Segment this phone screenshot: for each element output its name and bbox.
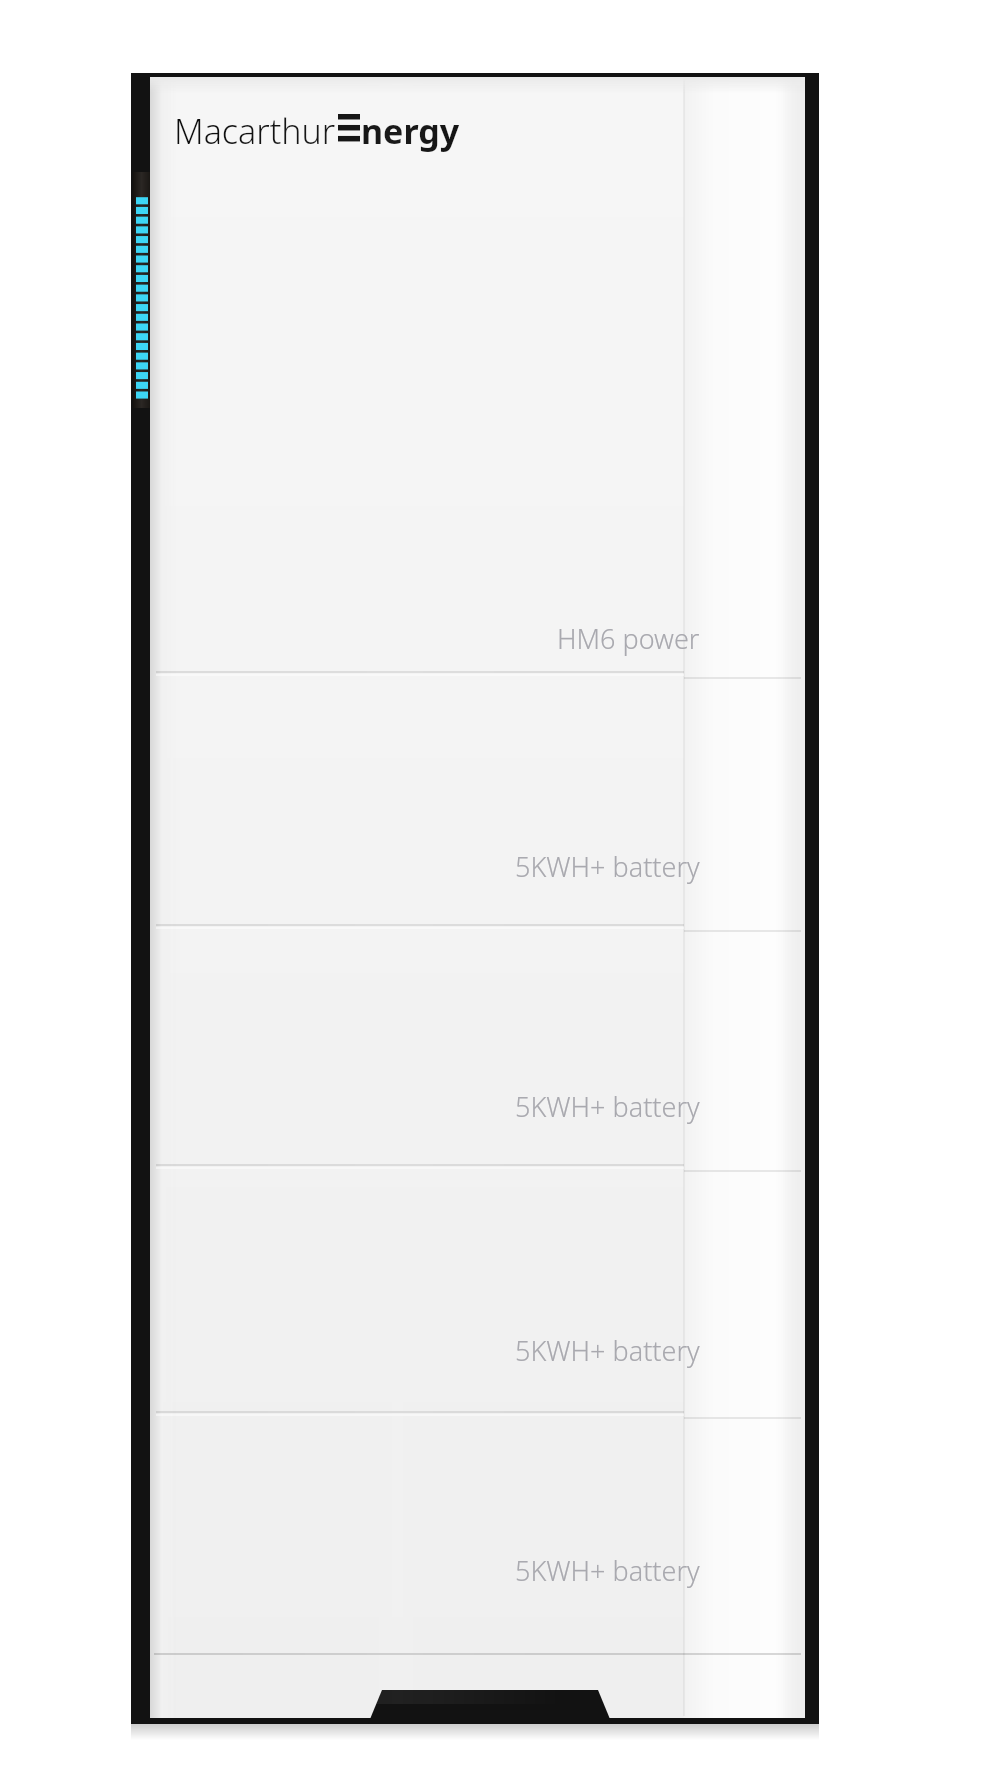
button[interactable]: Macarthur Energy stacked home battery sy… <box>0 0 985 1789</box>
